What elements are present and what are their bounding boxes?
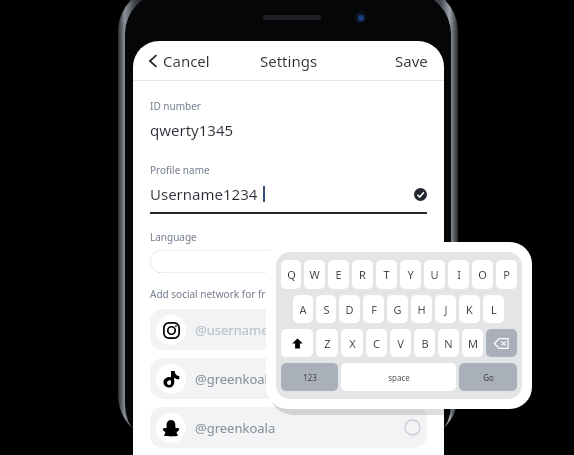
button[interactable]: K xyxy=(459,295,480,323)
button[interactable]: P xyxy=(496,260,517,289)
button[interactable]: Shift xyxy=(281,329,313,357)
staticText: W xyxy=(309,267,320,282)
staticText: J xyxy=(444,302,448,317)
staticText: @greenkoala xyxy=(195,419,276,437)
button[interactable]: M xyxy=(462,329,483,357)
staticText: C xyxy=(373,336,380,351)
button[interactable]: N xyxy=(438,329,459,357)
staticText: I xyxy=(457,267,461,282)
staticText: T xyxy=(383,267,390,282)
button[interactable]: X xyxy=(341,329,363,357)
staticText: H xyxy=(417,302,426,317)
button[interactable]: L xyxy=(483,295,504,323)
staticText: A xyxy=(299,302,307,317)
button[interactable]: Save xyxy=(391,47,432,75)
staticText: ID number xyxy=(150,99,201,113)
button[interactable]: Go xyxy=(459,363,517,391)
button[interactable]: G xyxy=(387,295,408,323)
button[interactable]: C xyxy=(366,329,387,357)
button[interactable]: Q xyxy=(281,260,301,289)
staticText: Profile name xyxy=(150,163,210,177)
button[interactable]: W xyxy=(304,260,325,289)
button[interactable]: H xyxy=(411,295,432,323)
button[interactable]: 123 xyxy=(281,363,338,391)
button[interactable]: T xyxy=(376,260,397,289)
button[interactable]: F xyxy=(363,295,384,323)
button[interactable]: @greenkoala xyxy=(150,407,427,448)
staticText: Username1234 xyxy=(150,184,258,204)
staticText: Y xyxy=(407,267,414,282)
button[interactable]: @greenkoala xyxy=(150,358,427,399)
staticText: G xyxy=(393,302,402,317)
button[interactable]: Cancel xyxy=(145,47,214,75)
staticText: Cancel xyxy=(163,51,210,71)
staticText: R xyxy=(359,267,366,282)
button[interactable]: space xyxy=(341,363,456,391)
staticText: V xyxy=(397,336,404,351)
staticText: space xyxy=(388,372,410,383)
staticText: B xyxy=(421,336,429,351)
staticText: D xyxy=(345,302,354,317)
staticText: @username xyxy=(195,321,269,339)
staticText: X xyxy=(349,336,356,351)
staticText: P xyxy=(503,267,510,282)
staticText: Settings xyxy=(260,51,318,71)
button[interactable]: Z xyxy=(316,329,338,357)
staticText: F xyxy=(371,302,377,317)
button[interactable]: Y xyxy=(400,260,421,289)
staticText: Add social network for friends xyxy=(150,287,291,301)
staticText: Save xyxy=(395,51,428,71)
button[interactable]: S xyxy=(316,295,336,323)
staticText: E xyxy=(335,267,342,282)
staticText: 123 xyxy=(303,372,317,383)
button[interactable]: A xyxy=(293,295,313,323)
staticText: M xyxy=(468,336,478,351)
staticText: O xyxy=(478,267,487,282)
staticText: L xyxy=(491,302,497,317)
staticText: qwerty1345 xyxy=(150,120,234,140)
button[interactable]: O xyxy=(472,260,493,289)
staticText: U xyxy=(430,267,439,282)
button[interactable]: Backspace xyxy=(486,329,517,357)
staticText: English xyxy=(268,254,309,270)
button[interactable]: I xyxy=(448,260,469,289)
button[interactable]: V xyxy=(390,329,411,357)
staticText: N xyxy=(444,336,453,351)
staticText: @greenkoala xyxy=(195,370,276,388)
button[interactable]: U xyxy=(424,260,445,289)
staticText: S xyxy=(323,302,330,317)
button[interactable]: D xyxy=(339,295,360,323)
staticText: Q xyxy=(287,267,296,282)
button[interactable]: J xyxy=(435,295,456,323)
button[interactable]: B xyxy=(414,329,435,357)
staticText: Go xyxy=(483,372,494,383)
staticText: K xyxy=(466,302,473,317)
staticText: Language xyxy=(150,230,197,244)
button[interactable]: R xyxy=(352,260,373,289)
button[interactable]: E xyxy=(328,260,349,289)
button[interactable]: @username xyxy=(150,309,427,350)
staticText: Z xyxy=(324,336,331,351)
button[interactable]: English xyxy=(150,250,427,273)
